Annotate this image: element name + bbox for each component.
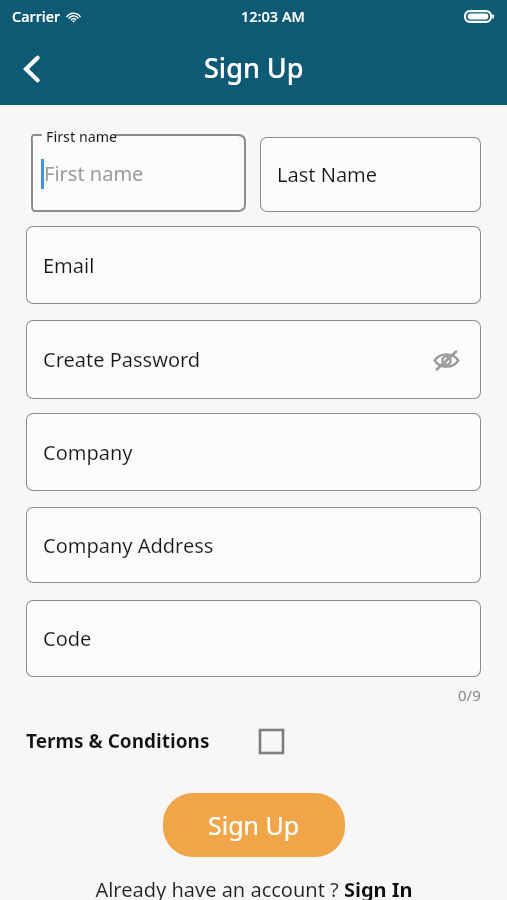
- staticText: Code: [43, 625, 92, 652]
- staticText: Last Name: [277, 161, 378, 188]
- button[interactable]: Sign Up: [163, 793, 345, 857]
- button[interactable]: Show password: [425, 339, 467, 381]
- staticText: 0/9: [458, 685, 481, 705]
- button[interactable]: Last Name: [260, 137, 481, 212]
- button[interactable]: Accept terms and conditions: [260, 730, 283, 753]
- button[interactable]: First name: [26, 130, 246, 212]
- staticText: Already have an account ? Sign In: [95, 876, 413, 900]
- staticText: Email: [43, 252, 95, 279]
- staticText: Carrier: [12, 6, 61, 26]
- staticText: Company: [43, 439, 133, 466]
- button[interactable]: Terms & Conditions: [26, 728, 210, 754]
- button[interactable]: Back: [8, 45, 56, 93]
- staticText: Terms & Conditions: [26, 728, 210, 754]
- button[interactable]: Email: [26, 226, 481, 304]
- staticText: First name: [46, 127, 117, 146]
- button[interactable]: Already have an account ? Sign In: [95, 876, 413, 900]
- staticText: Sign Up: [204, 49, 304, 86]
- staticText: Company Address: [43, 532, 214, 559]
- button[interactable]: Company Address: [26, 507, 481, 583]
- button[interactable]: Company: [26, 413, 481, 491]
- staticText: 12:03 AM: [241, 6, 305, 26]
- staticText: Sign Up: [208, 808, 300, 842]
- button[interactable]: Create Password: [26, 320, 481, 399]
- staticText: Create Password: [43, 346, 201, 373]
- button[interactable]: Code: [26, 600, 481, 677]
- staticText: First name: [44, 160, 144, 187]
